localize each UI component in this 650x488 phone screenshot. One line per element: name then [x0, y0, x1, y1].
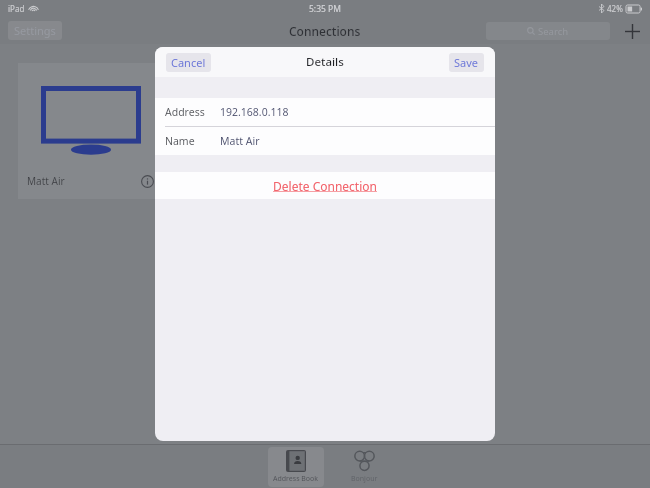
staticText: Name — [165, 134, 195, 148]
staticText: Address — [165, 105, 205, 119]
staticText: Bonjour — [351, 474, 378, 484]
staticText: 192.168.0.118 — [220, 105, 289, 119]
staticText: Matt Air — [27, 174, 65, 188]
staticText: Delete Connection — [273, 178, 377, 194]
staticText: 5:35 PM — [309, 3, 341, 15]
button[interactable]: Address — [155, 98, 495, 126]
staticText: Connections — [289, 23, 361, 39]
button[interactable]: Matt Air — [18, 63, 164, 199]
button[interactable]: Save — [449, 53, 484, 72]
button[interactable]: Settings — [8, 21, 62, 40]
staticText: Search — [538, 25, 569, 38]
staticText: 42% — [607, 3, 623, 14]
button[interactable]: Address Book — [268, 447, 324, 487]
staticText: Matt Air — [220, 134, 260, 148]
button[interactable]: Delete Connection — [155, 172, 495, 199]
button[interactable]: Cancel — [166, 53, 211, 72]
button[interactable]: Bonjour — [346, 447, 383, 487]
button[interactable]: Add connection — [620, 19, 644, 43]
staticText: Cancel — [171, 55, 206, 70]
staticText: Save — [454, 55, 479, 70]
staticText: Details — [306, 54, 344, 70]
staticText: iPad — [8, 3, 25, 14]
button[interactable]: Info — [139, 173, 155, 189]
button[interactable]: Name — [155, 127, 495, 155]
staticText: Address Book — [273, 474, 319, 484]
staticText: Settings — [14, 23, 56, 38]
